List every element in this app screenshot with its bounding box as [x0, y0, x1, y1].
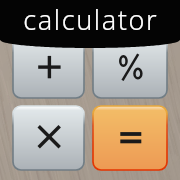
button[interactable]: Multiply [13, 106, 84, 170]
button[interactable]: Plus [13, 33, 84, 98]
button[interactable]: Percent [93, 33, 167, 98]
button[interactable]: Equals [93, 106, 167, 170]
